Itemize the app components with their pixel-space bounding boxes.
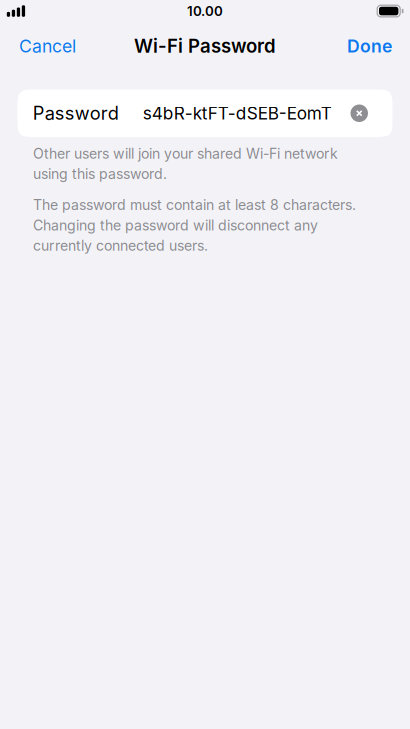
staticText: Cancel xyxy=(19,35,76,57)
staticText: The password must contain at least 8 cha… xyxy=(33,196,356,254)
staticText: Done xyxy=(347,35,392,57)
staticText: Password xyxy=(33,102,119,124)
staticText: 10.00 xyxy=(187,3,223,19)
staticText: Other users will join your shared Wi-Fi … xyxy=(33,145,338,182)
button[interactable]: Cancel xyxy=(0,28,90,64)
button[interactable]: Done xyxy=(333,28,410,64)
staticText: s4bR-ktFT-dSEB-EomT xyxy=(143,103,332,124)
button[interactable]: Password xyxy=(17,89,392,137)
button[interactable]: Clear password xyxy=(350,104,368,122)
staticText: Wi-Fi Password xyxy=(134,35,276,57)
